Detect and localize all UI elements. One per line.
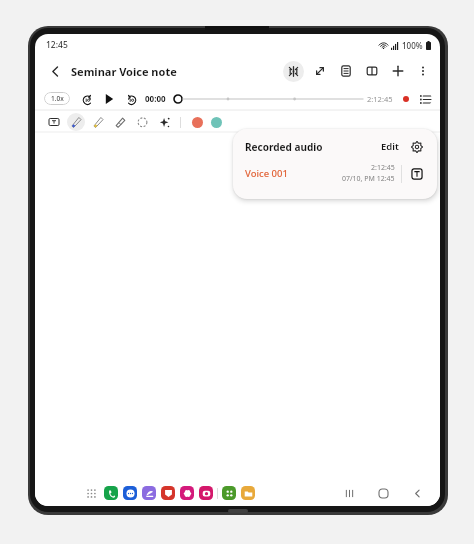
staticText: 2:12:45 xyxy=(371,163,395,173)
staticText: 1.0x xyxy=(51,94,64,103)
button[interactable]: Add xyxy=(389,62,407,80)
button[interactable]: Internet xyxy=(142,486,156,500)
button[interactable]: Pen xyxy=(67,113,85,131)
button[interactable]: Notes list xyxy=(337,62,355,80)
button[interactable]: Play xyxy=(102,92,116,106)
button[interactable]: Files xyxy=(241,486,255,500)
staticText: Edit xyxy=(381,140,399,153)
staticText: Recorded audio xyxy=(245,140,323,154)
button[interactable]: Expand xyxy=(311,62,329,80)
staticText: 00:00 xyxy=(145,93,166,104)
button[interactable]: Smart tools xyxy=(155,113,173,131)
button[interactable]: Phone xyxy=(104,486,118,500)
button[interactable]: 1.0x xyxy=(44,92,70,105)
staticText: Seminar Voice note xyxy=(71,64,177,79)
button[interactable]: Two page view xyxy=(363,62,381,80)
button[interactable]: Lasso select xyxy=(133,113,151,131)
button[interactable]: Text tool xyxy=(45,113,63,131)
button[interactable]: Eraser xyxy=(111,113,129,131)
staticText: 07/10, PM 12:45 xyxy=(342,174,395,184)
button[interactable]: Record xyxy=(399,92,412,105)
staticText: 12:45 xyxy=(46,39,68,51)
button[interactable]: Home xyxy=(374,484,392,502)
button[interactable]: More options xyxy=(414,62,432,80)
staticText: 100% xyxy=(402,40,423,51)
button[interactable]: Apps xyxy=(83,485,99,501)
button[interactable]: Settings xyxy=(409,139,425,155)
button[interactable]: Messages xyxy=(123,486,137,500)
button[interactable]: Transcript list xyxy=(418,92,432,106)
button[interactable]: Back xyxy=(45,61,65,81)
button[interactable]: Highlighter xyxy=(89,113,107,131)
button[interactable]: Gallery xyxy=(161,486,175,500)
button[interactable]: Transcribe xyxy=(408,165,425,182)
staticText: Voice 001 xyxy=(245,167,288,180)
button[interactable]: Recents xyxy=(340,484,358,502)
button[interactable]: Camera xyxy=(199,486,213,500)
staticText: 2:12:45 xyxy=(367,94,393,104)
button[interactable]: Back xyxy=(408,484,426,502)
button[interactable]: Forward 10 seconds xyxy=(124,92,138,106)
button[interactable]: Color red xyxy=(189,114,205,130)
button[interactable]: Edit xyxy=(378,138,402,155)
button[interactable]: Store xyxy=(180,486,194,500)
button[interactable]: Calculator xyxy=(222,486,236,500)
button[interactable]: Rewind 10 seconds xyxy=(80,92,94,106)
button[interactable]: Voice enhance xyxy=(283,61,304,82)
button[interactable]: Color teal xyxy=(208,114,224,130)
button[interactable]: Voice 001 xyxy=(245,163,425,184)
